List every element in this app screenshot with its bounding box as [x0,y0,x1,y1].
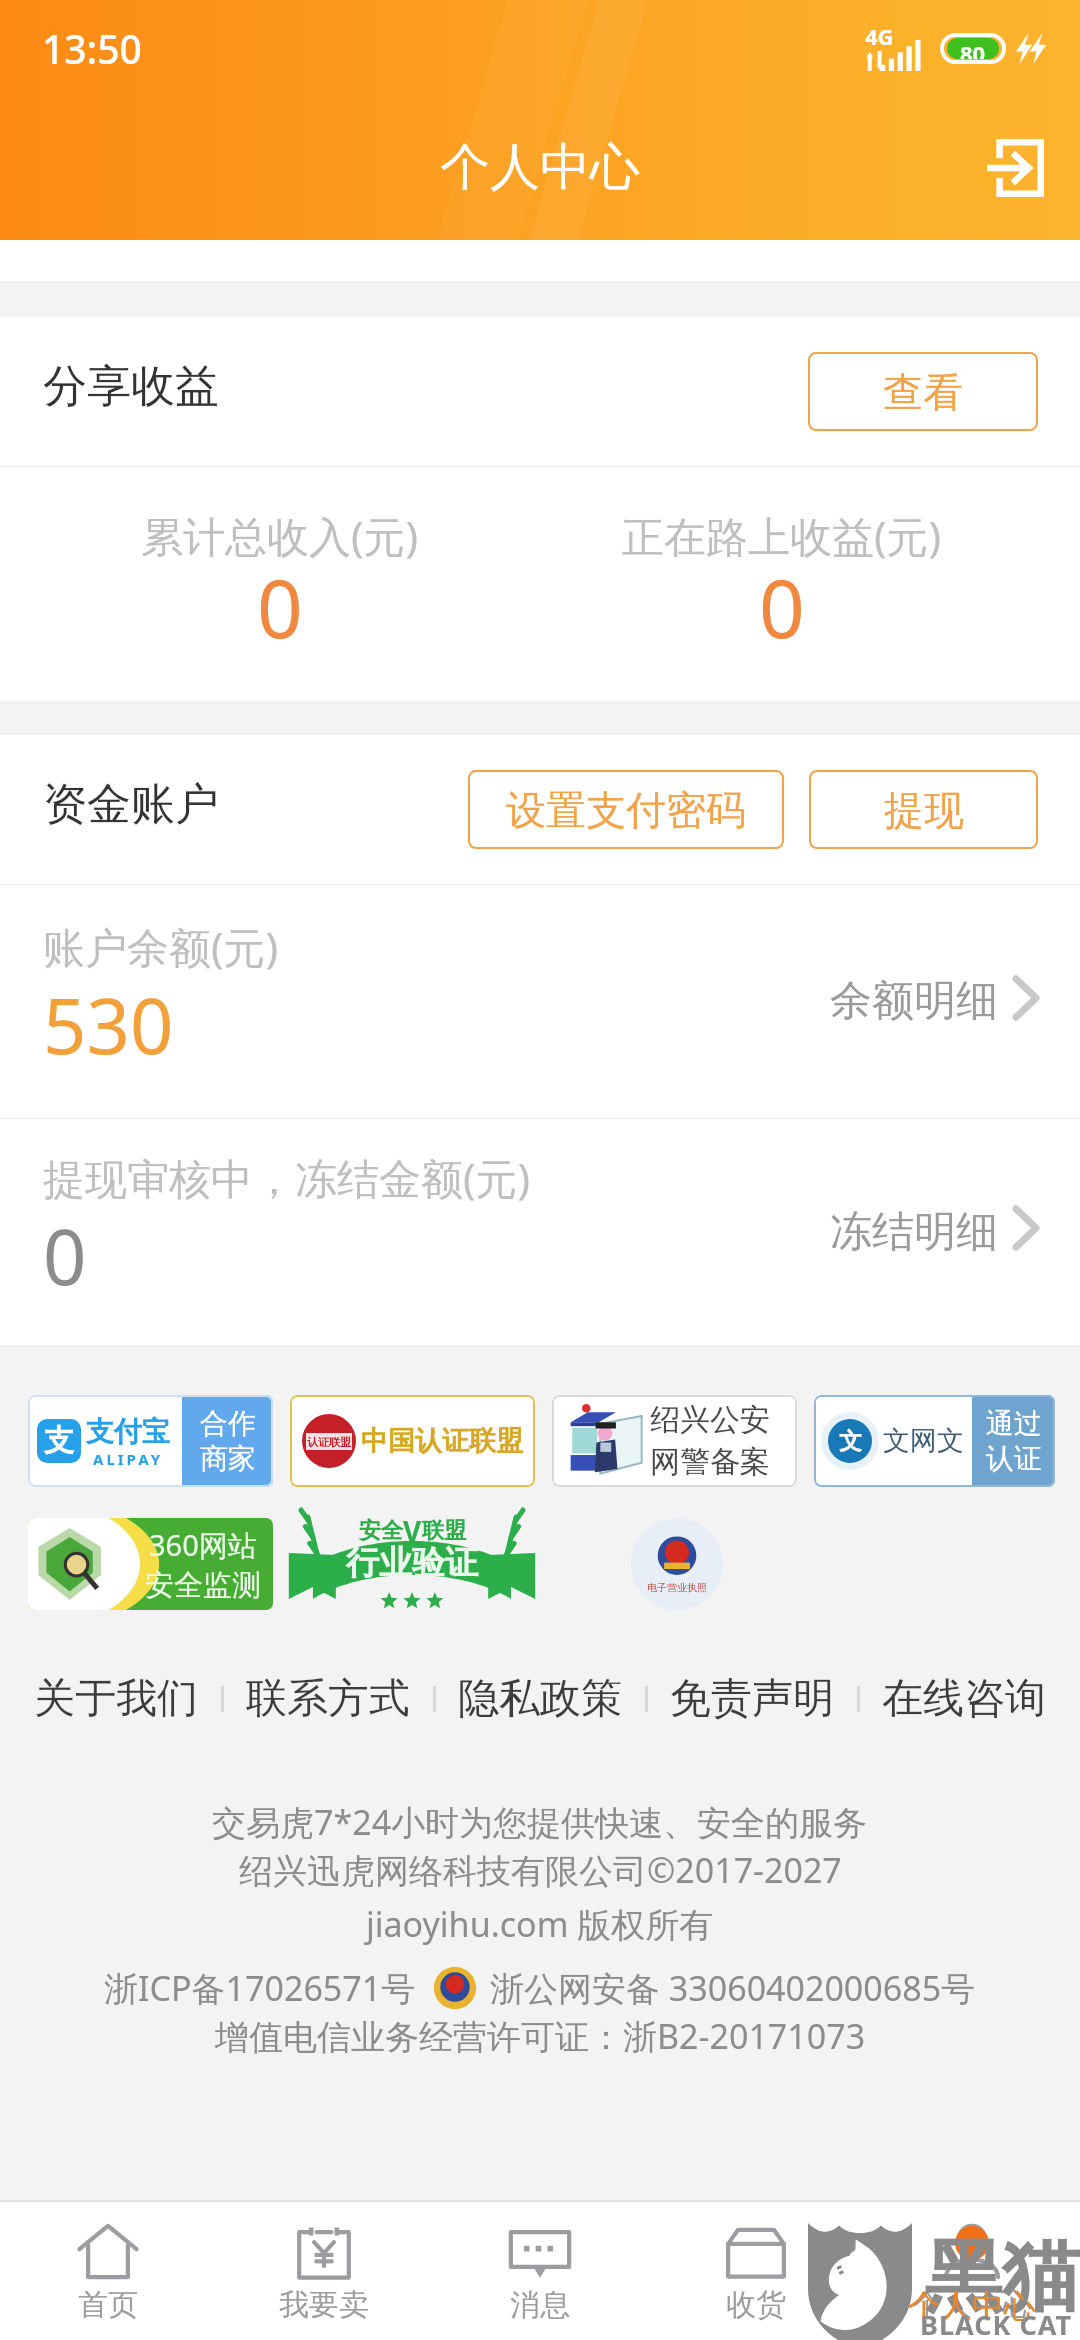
staticText: 设置支付密码 [506,785,746,835]
button[interactable]: 查看 [808,352,1038,431]
button[interactable]: 提现 [809,770,1038,849]
button[interactable]: 提现审核中，冻结金额(元) [43,1119,1038,1345]
button[interactable]: 联系方式 [246,1673,410,1725]
button[interactable]: 安全 [285,1511,539,1611]
staticText: 中国认证联盟 [361,1424,523,1458]
staticText: 0 [43,1204,87,1308]
staticText: 提现审核中，冻结金额(元) [43,1149,531,1206]
button[interactable]: 在线咨询 [882,1673,1046,1725]
staticText: 支 [44,1422,74,1460]
staticText: 首页 [78,2286,138,2324]
button[interactable]: 我要卖 [216,2202,432,2340]
staticText: V [403,1512,422,1550]
staticText: 电子营业执照 [647,1581,707,1594]
staticText: 4G [865,21,894,51]
staticText: 文 [839,1427,862,1456]
button[interactable]: 账户余额(元) [43,885,1038,1118]
button[interactable]: 免责声明 [670,1673,834,1725]
staticText: 查看 [883,367,963,417]
button[interactable]: 收货 [648,2202,864,2340]
button[interactable]: 隐私政策 [458,1673,622,1725]
staticText: 认证 [986,1441,1042,1476]
button[interactable]: 首页 [0,2202,216,2340]
button[interactable]: 认证联盟 [290,1395,535,1487]
staticText: 0 [759,552,805,661]
staticText: 个人中心 [912,2286,1032,2324]
staticText: 联盟 [422,1517,466,1545]
staticText: 消息 [510,2286,570,2324]
staticText: 关于我们 [34,1673,198,1725]
staticText: 商家 [200,1441,256,1476]
button[interactable]: 关于我们 [34,1673,198,1725]
staticText: 认证联盟 [307,1435,351,1449]
staticText: 余额明细 [830,975,998,1028]
staticText: jiaoyihu.com 版权所有 [366,1901,714,1947]
staticText: 提现 [884,785,964,835]
staticText: ALIPAY [93,1449,164,1469]
staticText: 在线咨询 [882,1673,1046,1725]
staticText: 账户余额(元) [43,918,279,975]
staticText: 通过 [986,1406,1042,1441]
staticText: 浙ICP备17026571号 [104,1965,416,2011]
staticText: 安全监测 [145,1567,261,1604]
staticText: 支付宝 [86,1414,170,1449]
staticText: 行业验证 [346,1542,478,1584]
staticText: 合作 [200,1406,256,1441]
button[interactable]: 文 [814,1395,1055,1487]
staticText: 360网站 [149,1525,257,1565]
staticText: 530 [43,973,174,1077]
staticText: 13:50 [42,22,142,75]
staticText: 免责声明 [670,1673,834,1725]
staticText: 绍兴公安 [650,1401,770,1439]
button[interactable]: 消息 [432,2202,648,2340]
staticText: 正在路上收益(元) [622,507,942,564]
staticText: 黑猫 [924,2228,1080,2326]
staticText: 交易虎7*24小时为您提供快速、安全的服务 [212,1799,868,1845]
staticText: 隐私政策 [458,1673,622,1725]
staticText: 80 [960,38,986,59]
staticText: 冻结明细 [830,1206,998,1259]
staticText: 文网文 [883,1424,964,1458]
staticText: 增值电信业务经营许可证：浙B2-20171073 [215,2013,866,2059]
button[interactable]: 设置支付密码 [468,770,784,849]
staticText: 联系方式 [246,1673,410,1725]
button[interactable]: 360网站 [28,1518,273,1610]
staticText: 资金账户 [43,777,219,832]
staticText: 安全 [359,1517,403,1545]
button[interactable]: 电子营业执照 [631,1518,723,1610]
staticText: 绍兴迅虎网络科技有限公司©2017-2027 [239,1847,842,1893]
staticText: 收货 [726,2286,786,2324]
button[interactable]: 支 [28,1395,273,1487]
staticText: 个人中心 [440,136,640,199]
staticText: 0 [257,552,303,661]
staticText: 累计总收入(元) [141,507,419,564]
staticText: 网警备案 [650,1443,770,1481]
button[interactable]: 个人中心 [864,2202,1080,2340]
staticText: BLACK CAT [920,2306,1073,2340]
staticText: 我要卖 [279,2286,369,2324]
staticText: 个人中心 [908,2286,1036,2326]
button[interactable]: 绍兴公安 [552,1395,797,1487]
staticText: 分享收益 [43,359,219,414]
staticText: 浙公网安备 33060402000685号 [490,1965,976,2011]
button[interactable]: 退出登录 [976,130,1052,206]
